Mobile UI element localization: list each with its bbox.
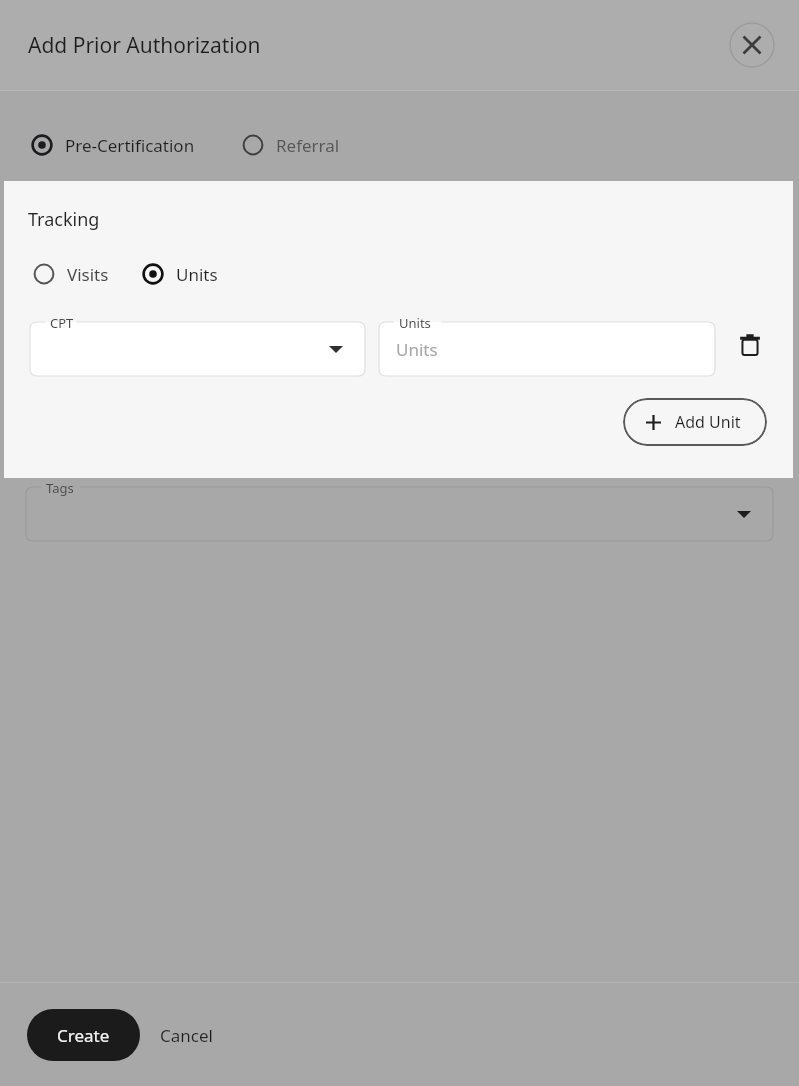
button[interactable]: Open dropdown [733, 503, 755, 525]
button[interactable]: Pre-Certification [28, 129, 197, 161]
staticText: Add Unit [675, 411, 741, 433]
button[interactable]: Delete [729, 324, 771, 366]
staticText: Auth # [43, 206, 97, 229]
staticText: Units [176, 263, 218, 286]
staticText: Tracking [28, 207, 100, 232]
staticText: Effective Date [46, 260, 130, 278]
button[interactable]: Open dropdown [325, 338, 347, 360]
button[interactable]: Add Unit [623, 398, 767, 446]
button[interactable]: Cancel [140, 1012, 233, 1059]
staticText: Units [399, 314, 431, 332]
staticText: Authorization Number* [46, 180, 191, 198]
button[interactable]: Close [729, 22, 775, 68]
button[interactable]: Create [27, 1009, 140, 1061]
button[interactable]: Units [139, 258, 220, 290]
staticText: CPT [50, 314, 74, 332]
staticText: Visits [67, 263, 109, 286]
staticText: Units [396, 338, 438, 361]
staticText: Cancel [160, 1024, 213, 1047]
staticText: Add Prior Authorization [28, 31, 261, 60]
button[interactable]: Notes [26, 340, 773, 462]
staticText: Referral [276, 134, 340, 157]
staticText: Pre-Certification [65, 134, 195, 157]
staticText: Notes [43, 356, 88, 378]
staticText: Tags [46, 479, 74, 497]
staticText: Insurance* [430, 180, 498, 198]
button[interactable]: Visits [30, 258, 111, 290]
staticText: Create [57, 1024, 110, 1047]
button[interactable]: Referral [239, 129, 342, 161]
